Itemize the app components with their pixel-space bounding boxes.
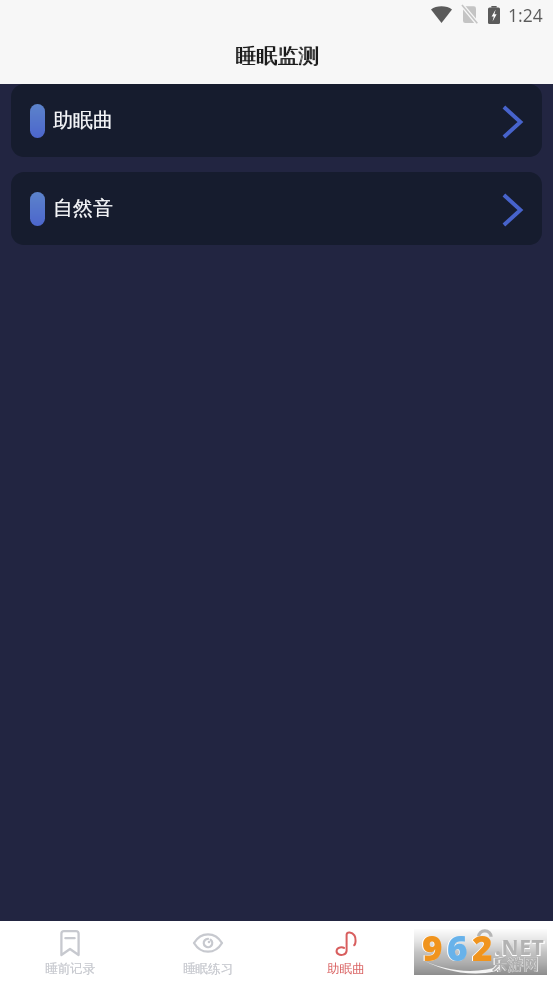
staticText: 9 xyxy=(422,924,443,970)
staticText: 自然音 xyxy=(53,196,113,221)
staticText: 我的 xyxy=(472,961,497,977)
staticText: 睡眠练习 xyxy=(183,961,233,977)
staticText: 1:24 xyxy=(508,3,543,27)
staticText: 乐游网 xyxy=(491,955,540,975)
button[interactable]: 助眠曲 xyxy=(11,84,542,157)
staticText: 助眠曲 xyxy=(53,108,113,133)
staticText: 助眠曲 xyxy=(327,961,365,977)
staticText: 睡眠监测 xyxy=(235,43,319,69)
button[interactable]: 睡前记录 xyxy=(0,921,139,983)
staticText: 睡眠监测 xyxy=(236,43,320,69)
staticText: .NET xyxy=(494,932,546,962)
staticText: 9 xyxy=(421,923,443,969)
staticText: 2 xyxy=(472,924,493,970)
button[interactable]: 我的 xyxy=(415,921,553,983)
button[interactable]: 自然音 xyxy=(11,172,542,245)
staticText: 2 xyxy=(471,923,493,969)
staticText: 乐游网 xyxy=(492,956,540,975)
staticText: 6 xyxy=(446,923,468,969)
staticText: 6 xyxy=(447,924,468,970)
button[interactable]: 睡眠练习 xyxy=(139,921,277,983)
staticText: 睡前记录 xyxy=(45,961,95,977)
staticText: .NET xyxy=(495,933,545,962)
button[interactable]: 助眠曲 xyxy=(277,921,415,983)
